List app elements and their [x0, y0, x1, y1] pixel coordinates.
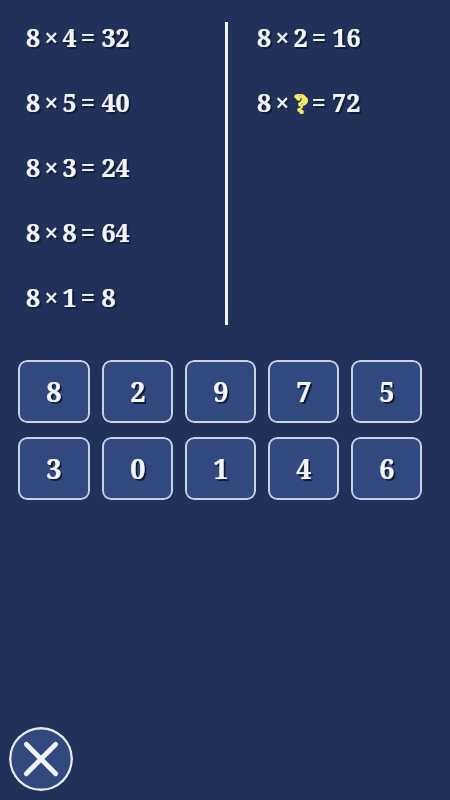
staticText: 8 × 8 = 64 [26, 215, 130, 249]
staticText: 8 × ? = 72 [259, 87, 363, 121]
staticText: 7 [296, 373, 312, 410]
button[interactable]: 6 [351, 437, 422, 500]
button[interactable]: 2 [102, 360, 173, 423]
button[interactable]: 9 [185, 360, 256, 423]
staticText: 5 [381, 375, 397, 412]
staticText: 8 × 5 = 40 [26, 85, 130, 119]
button[interactable]: 3 [18, 437, 90, 500]
staticText: 8 × 4 = 32 [26, 20, 130, 54]
staticText: 8 × 8 = 64 [28, 217, 132, 251]
staticText: 3 [46, 450, 62, 487]
staticText: 8 × 5 = 40 [28, 87, 132, 121]
button[interactable]: 5 [351, 360, 422, 423]
staticText: 8 × 1 = 8 [28, 282, 118, 316]
staticText: 8 × 2 = 16 [257, 20, 361, 54]
staticText: 8 [46, 373, 62, 410]
staticText: 3 [48, 452, 64, 489]
staticText: 6 [381, 452, 397, 489]
staticText: 8 × ? = 72 [257, 85, 361, 119]
button[interactable]: 1 [185, 437, 256, 500]
staticText: 4 [296, 450, 312, 487]
staticText: 8 × 2 = 16 [259, 22, 363, 56]
staticText: 8 × 1 = 8 [26, 280, 116, 314]
staticText: 7 [298, 375, 314, 412]
button[interactable]: 0 [102, 437, 173, 500]
staticText: 8 × 4 = 32 [28, 22, 132, 56]
staticText: 9 [213, 373, 229, 410]
button[interactable]: 8 [18, 360, 90, 423]
staticText: 6 [379, 450, 395, 487]
staticText: 0 [130, 450, 146, 487]
staticText: 8 × 3 = 24 [26, 150, 130, 184]
staticText: 1 [215, 452, 231, 489]
staticText: 0 [132, 452, 148, 489]
staticText: 2 [132, 375, 148, 412]
staticText: 8 × 3 = 24 [28, 152, 132, 186]
button[interactable]: 4 [268, 437, 339, 500]
button[interactable]: Close [9, 727, 73, 791]
staticText: 4 [298, 452, 314, 489]
staticText: 8 [48, 375, 64, 412]
staticText: 9 [215, 375, 231, 412]
staticText: 2 [130, 373, 146, 410]
staticText: 5 [379, 373, 395, 410]
staticText: 1 [213, 450, 229, 487]
button[interactable]: 7 [268, 360, 339, 423]
